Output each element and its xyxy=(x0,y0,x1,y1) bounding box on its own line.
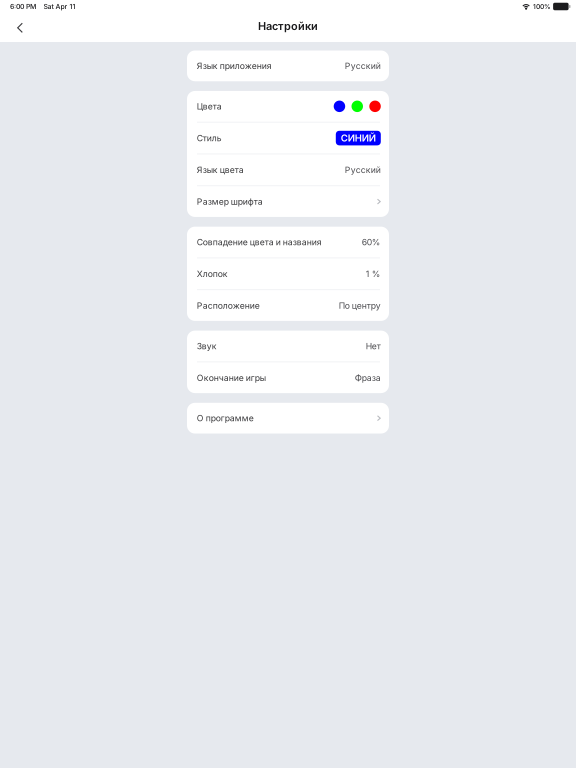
staticText: 1 % xyxy=(366,268,381,279)
staticText: 60% xyxy=(362,237,381,247)
button[interactable]: Размер шрифта xyxy=(187,186,389,217)
staticText: Язык приложения xyxy=(197,61,272,71)
staticText: Фраза xyxy=(355,372,381,383)
button[interactable]: Цвета xyxy=(187,91,389,122)
staticText: Стиль xyxy=(197,133,222,143)
staticText: Язык цвета xyxy=(197,165,244,175)
staticText: Цвета xyxy=(197,101,222,112)
staticText: Расположение xyxy=(197,300,260,311)
staticText: Окончание игры xyxy=(197,372,266,383)
staticText: 100% xyxy=(533,2,551,11)
staticText: Sat Apr 11 xyxy=(44,2,76,11)
staticText: Нет xyxy=(366,341,381,351)
staticText: СИНИЙ xyxy=(341,132,376,144)
staticText: Настройки xyxy=(258,19,318,33)
staticText: Русский xyxy=(345,165,381,175)
button[interactable]: Совпадение цвета и названия xyxy=(187,227,389,257)
button[interactable]: Звук xyxy=(187,331,389,361)
button[interactable]: Back xyxy=(5,14,35,38)
staticText: Хлопок xyxy=(197,268,228,279)
staticText: Размер шрифта xyxy=(197,196,263,207)
button[interactable]: Язык цвета xyxy=(187,154,389,185)
staticText: По центру xyxy=(339,300,381,311)
button[interactable]: О программе xyxy=(187,403,389,434)
staticText: Звук xyxy=(197,341,217,351)
staticText: 6:00 PM xyxy=(10,2,36,11)
staticText: Русский xyxy=(345,61,381,71)
button[interactable]: Язык приложения xyxy=(187,50,389,81)
staticText: О программе xyxy=(197,413,254,423)
staticText: Совпадение цвета и названия xyxy=(197,237,322,247)
button[interactable]: Хлопок xyxy=(187,258,389,289)
button[interactable]: Окончание игры xyxy=(187,362,389,393)
button[interactable]: Расположение xyxy=(187,290,389,321)
button[interactable]: Стиль xyxy=(187,123,389,153)
